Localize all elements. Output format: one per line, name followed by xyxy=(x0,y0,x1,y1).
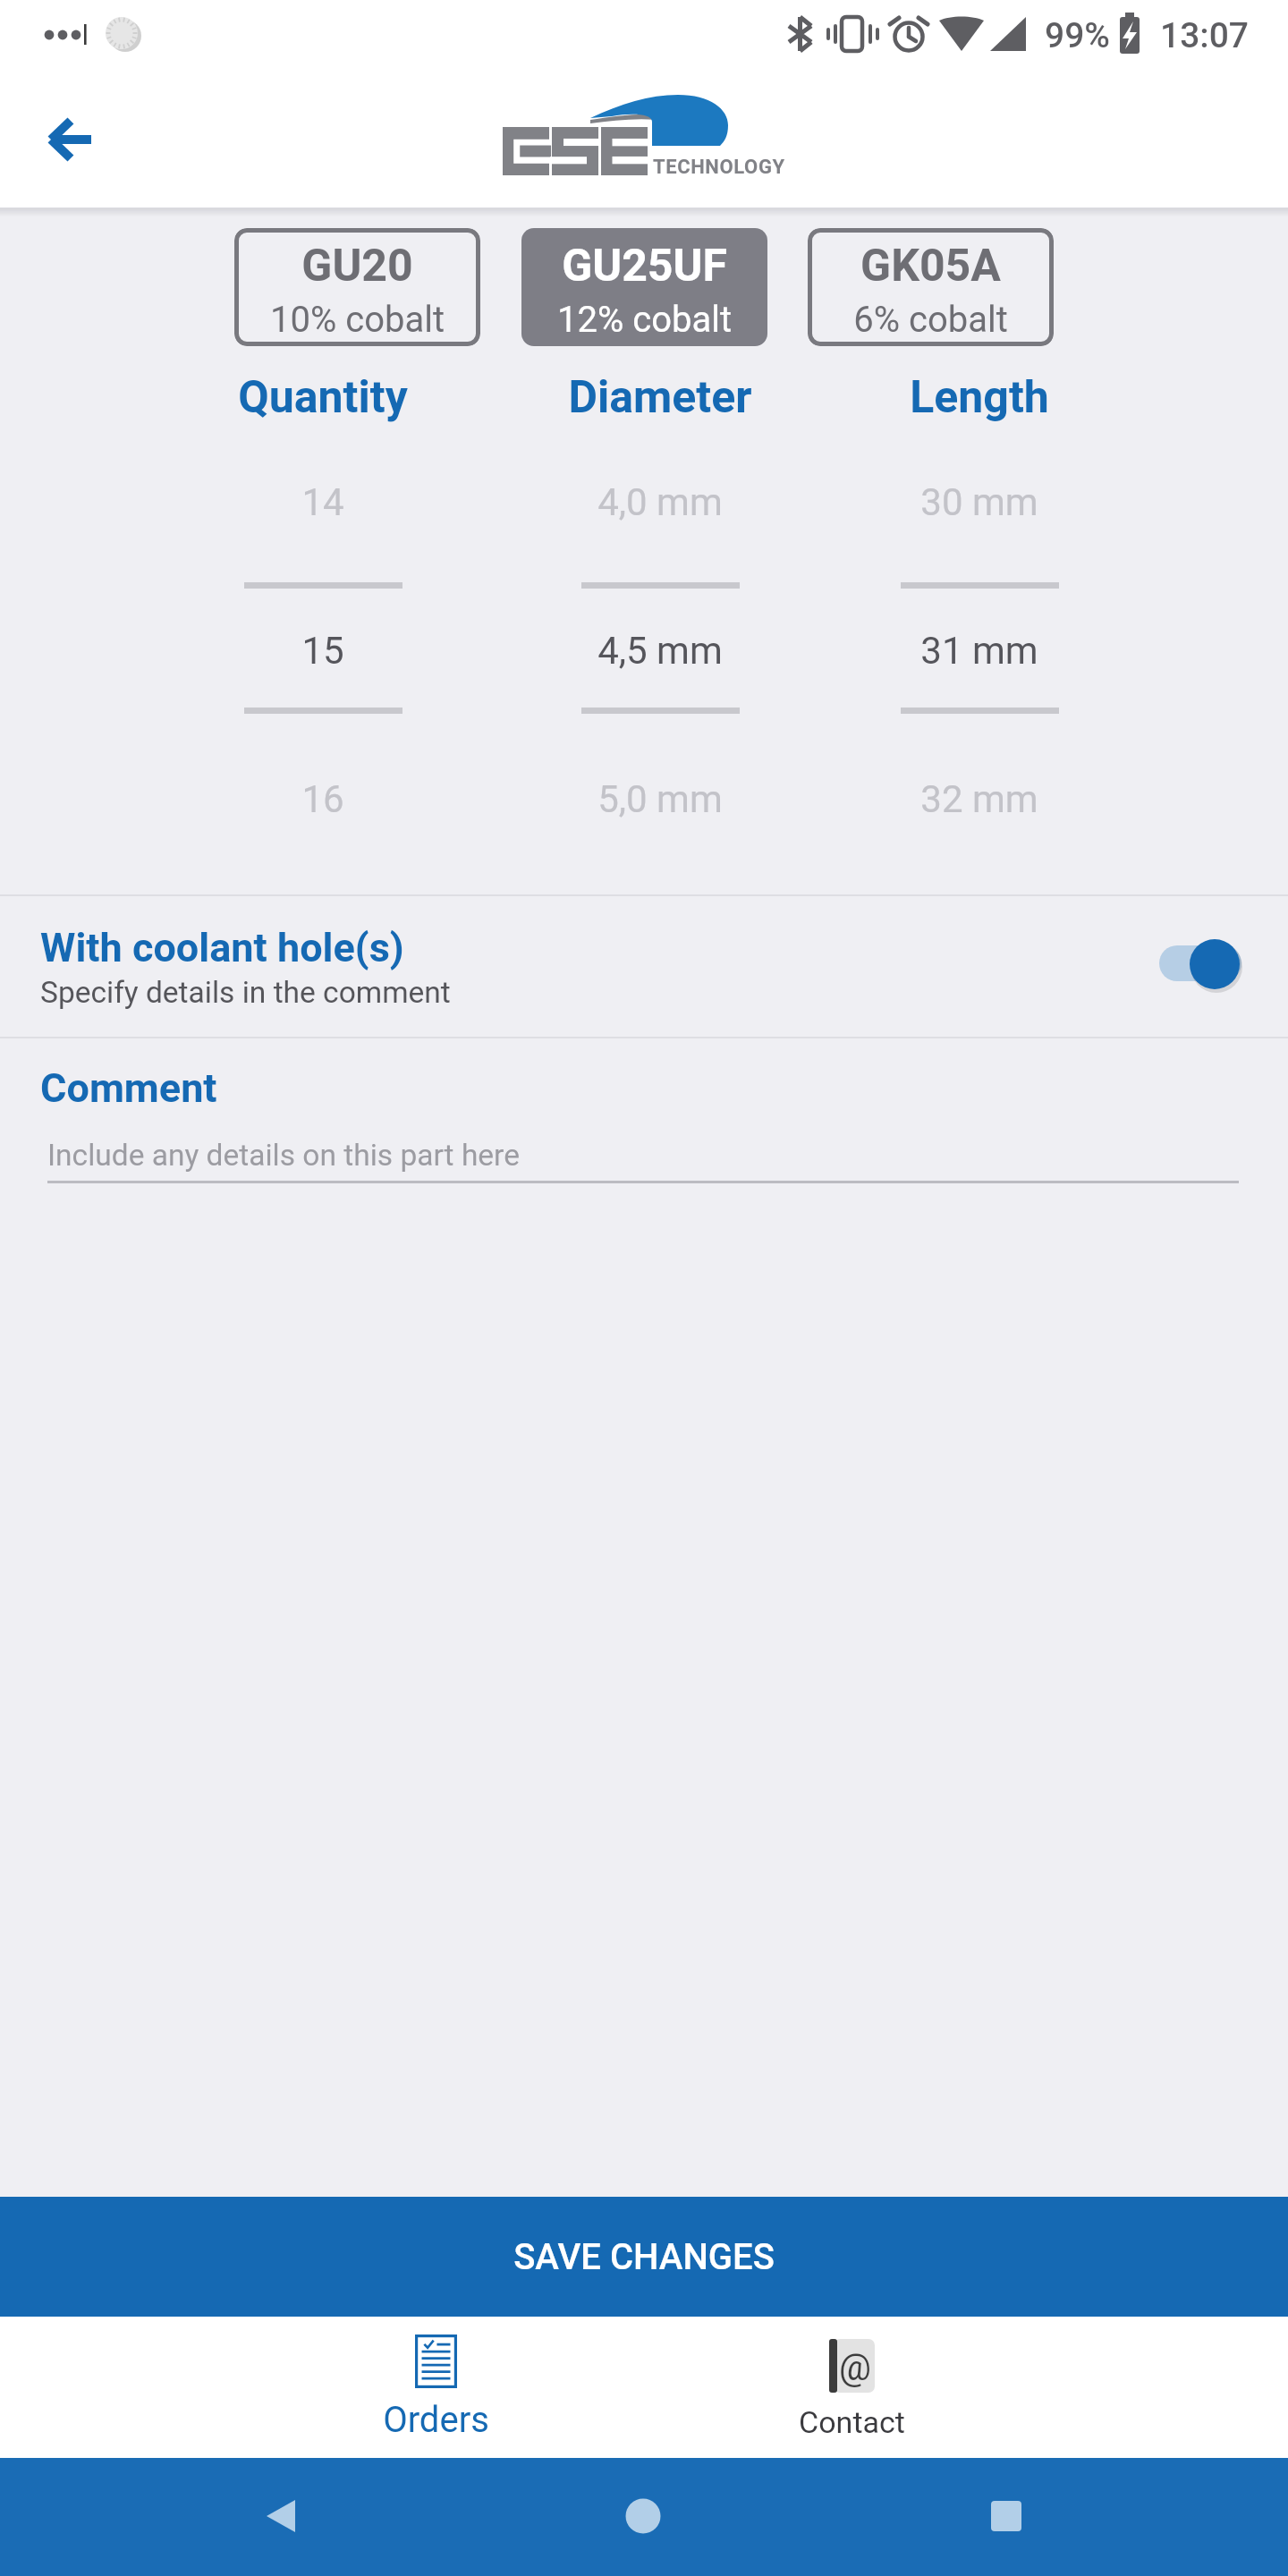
button[interactable]: Toggle coolant holes xyxy=(1145,923,1261,1013)
staticText: GU25UF xyxy=(521,240,767,292)
button[interactable]: GK05A xyxy=(808,228,1054,346)
button[interactable]: Back xyxy=(27,97,113,182)
staticText: TECHNOLOGY xyxy=(653,156,785,179)
staticText: @ xyxy=(836,2347,874,2389)
staticText: 14 xyxy=(131,480,515,524)
button[interactable]: GU20 xyxy=(234,228,480,346)
staticText: GK05A xyxy=(808,240,1054,292)
button[interactable]: Orders xyxy=(268,2317,604,2458)
button[interactable]: 30 mm xyxy=(787,436,1172,856)
staticText: Specify details in the comment xyxy=(40,975,451,1010)
button[interactable]: GU25UF xyxy=(521,228,767,346)
button[interactable]: 14 xyxy=(131,436,515,856)
staticText: Contact xyxy=(684,2404,1020,2440)
button[interactable]: Include any details on this part here xyxy=(47,1127,1239,1190)
staticText: 4,5 mm xyxy=(468,629,852,673)
staticText: 31 mm xyxy=(787,629,1172,673)
staticText: Include any details on this part here xyxy=(47,1138,520,1173)
staticText: 5,0 mm xyxy=(468,777,852,821)
button[interactable]: @ xyxy=(684,2317,1020,2458)
staticText: 15 xyxy=(131,629,515,673)
staticText: 4,0 mm xyxy=(468,480,852,524)
staticText: Comment xyxy=(40,1064,217,1112)
staticText: 13:07 xyxy=(1160,15,1250,56)
staticText: 99% xyxy=(1045,15,1110,56)
staticText: Diameter xyxy=(436,371,884,424)
staticText: Orders xyxy=(268,2399,604,2441)
staticText: 6% cobalt xyxy=(808,299,1054,341)
staticText: 16 xyxy=(131,777,515,821)
staticText: 32 mm xyxy=(787,777,1172,821)
button[interactable]: With coolant hole(s) xyxy=(0,896,1288,1037)
staticText: With coolant hole(s) xyxy=(40,924,404,971)
staticText: 12% cobalt xyxy=(521,299,767,341)
staticText: Quantity xyxy=(99,371,547,424)
button[interactable]: 4,0 mm xyxy=(468,436,852,856)
staticText: GU20 xyxy=(234,240,480,292)
button[interactable]: SAVE CHANGES xyxy=(0,2197,1288,2317)
staticText: 30 mm xyxy=(787,480,1172,524)
staticText: Length xyxy=(756,371,1203,424)
staticText: SAVE CHANGES xyxy=(241,2236,1046,2278)
staticText: 10% cobalt xyxy=(234,299,480,341)
